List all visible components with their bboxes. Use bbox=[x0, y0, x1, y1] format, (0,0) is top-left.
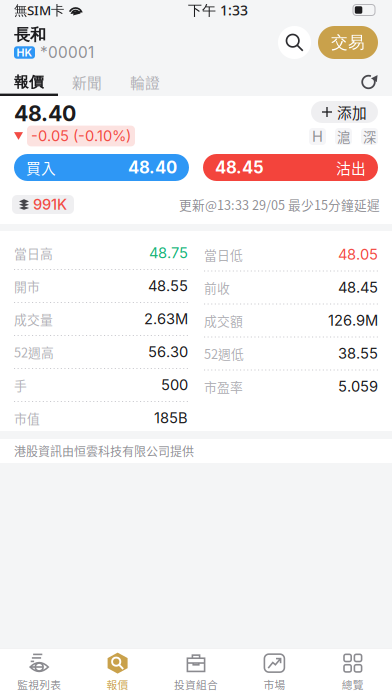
staticText: 當日高 bbox=[14, 244, 53, 262]
staticText: *00001 bbox=[40, 43, 94, 62]
staticText: 報價 bbox=[107, 677, 129, 692]
button[interactable]: 總覽 bbox=[314, 649, 392, 696]
staticText: 成交額 bbox=[204, 311, 243, 330]
staticText: 前收 bbox=[204, 278, 230, 297]
button[interactable]: Refresh bbox=[360, 73, 377, 90]
button[interactable]: H bbox=[309, 128, 326, 145]
button[interactable]: 市場 bbox=[235, 649, 314, 696]
staticText: 500 bbox=[161, 376, 188, 394]
staticText: 深 bbox=[363, 127, 376, 146]
staticText: 開市 bbox=[14, 277, 40, 295]
staticText: 市場 bbox=[263, 677, 285, 692]
staticText: 38.55 bbox=[338, 345, 378, 362]
staticText: 下午 1:33 bbox=[188, 0, 248, 20]
staticText: 185B bbox=[154, 409, 188, 427]
button[interactable]: 輪證 bbox=[116, 68, 174, 96]
staticText: 2.63M bbox=[144, 310, 188, 328]
staticText: 更新@13:33 29/05 最少15分鐘延遲 bbox=[179, 195, 380, 214]
staticText: HK bbox=[16, 46, 32, 59]
staticText: 添加 bbox=[337, 101, 367, 123]
staticText: 48.45 bbox=[338, 279, 378, 296]
button[interactable]: 48.45 bbox=[203, 154, 378, 181]
button[interactable]: 深 bbox=[361, 128, 378, 145]
button[interactable]: Search bbox=[278, 26, 311, 59]
staticText: 48.05 bbox=[338, 246, 378, 263]
button[interactable]: 交易 bbox=[318, 26, 378, 59]
staticText: 126.9M bbox=[328, 312, 378, 329]
staticText: 56.30 bbox=[148, 343, 188, 361]
staticText: 投資組合 bbox=[174, 677, 218, 692]
staticText: 沽出 bbox=[336, 157, 366, 178]
staticText: 市值 bbox=[14, 409, 40, 427]
button[interactable]: 新聞 bbox=[58, 68, 116, 96]
staticText: 48.40 bbox=[14, 101, 76, 126]
staticText: 手 bbox=[14, 376, 27, 394]
staticText: 總覽 bbox=[342, 677, 364, 692]
staticText: 48.45 bbox=[215, 157, 264, 178]
button[interactable]: 監視列表 bbox=[0, 649, 78, 696]
staticText: -0.05 (-0.10%) bbox=[31, 127, 131, 145]
button[interactable]: 報價 bbox=[0, 68, 58, 96]
staticText: 48.40 bbox=[128, 157, 177, 178]
staticText: 市盈率 bbox=[204, 377, 243, 396]
staticText: 輪證 bbox=[130, 71, 160, 93]
staticText: 監視列表 bbox=[17, 677, 61, 692]
staticText: 48.75 bbox=[149, 244, 188, 262]
staticText: H bbox=[312, 128, 323, 145]
staticText: 52週高 bbox=[14, 343, 54, 361]
staticText: 報價 bbox=[14, 73, 44, 91]
staticText: 48.55 bbox=[148, 277, 188, 295]
staticText: 買入 bbox=[26, 157, 56, 178]
staticText: 交易 bbox=[331, 32, 365, 53]
staticText: 無SIM卡 bbox=[14, 1, 64, 19]
staticText: 當日低 bbox=[204, 245, 243, 264]
button[interactable]: 滬 bbox=[335, 128, 352, 145]
staticText: 成交量 bbox=[14, 310, 53, 328]
staticText: 52週低 bbox=[204, 344, 244, 363]
staticText: 長和 bbox=[14, 25, 46, 45]
staticText: 991K bbox=[33, 196, 67, 213]
staticText: 新聞 bbox=[72, 71, 102, 93]
button[interactable]: 買入 bbox=[14, 154, 189, 181]
button[interactable]: 報價 bbox=[78, 649, 157, 696]
staticText: 滬 bbox=[337, 127, 350, 146]
button[interactable]: 投資組合 bbox=[157, 649, 235, 696]
staticText: 5.059 bbox=[338, 378, 378, 395]
button[interactable]: 添加 bbox=[311, 101, 378, 123]
staticText: 港股資訊由恒雲科技有限公司提供 bbox=[14, 442, 194, 460]
